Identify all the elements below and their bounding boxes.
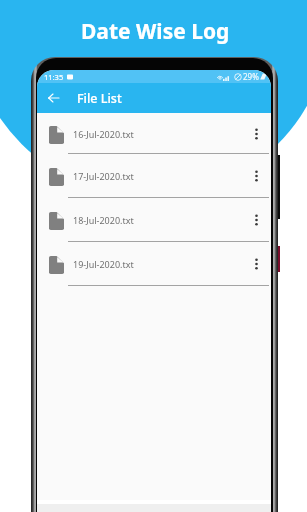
staticText: 16-Jul-2020.txt <box>73 128 134 140</box>
staticText: 19-Jul-2020.txt <box>73 258 134 270</box>
button[interactable]: 19-Jul-2020.txt <box>37 242 271 286</box>
staticText: 18-Jul-2020.txt <box>73 214 134 226</box>
button[interactable]: More options <box>246 254 266 274</box>
button[interactable]: More options <box>246 124 266 144</box>
staticText: 17-Jul-2020.txt <box>73 170 134 182</box>
staticText: File List <box>77 90 122 107</box>
button[interactable]: 18-Jul-2020.txt <box>37 198 271 242</box>
staticText: 29% <box>243 71 259 82</box>
button[interactable]: More options <box>246 166 266 186</box>
button[interactable]: More options <box>246 210 266 230</box>
staticText: 11:35 <box>44 72 64 82</box>
button[interactable]: 17-Jul-2020.txt <box>37 154 271 198</box>
button[interactable]: Back <box>42 87 64 109</box>
staticText: Date Wise Log <box>81 17 230 46</box>
button[interactable]: 16-Jul-2020.txt <box>37 113 271 154</box>
